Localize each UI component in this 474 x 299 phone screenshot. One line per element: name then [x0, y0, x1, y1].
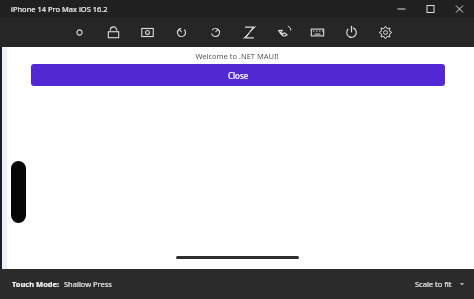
button[interactable]: Maximize — [416, 0, 445, 18]
staticText: Close — [228, 70, 249, 81]
button[interactable]: Rotate left — [172, 23, 191, 42]
staticText: Shallow Press — [64, 279, 112, 289]
button[interactable]: Rotate right — [206, 23, 225, 42]
staticText: Scale to fit — [415, 279, 452, 289]
staticText: Welcome to .NET MAUI! — [0, 51, 474, 61]
button[interactable]: Lock — [104, 23, 123, 42]
button[interactable]: Close — [445, 0, 474, 18]
button[interactable]: Minimize — [387, 0, 416, 18]
button[interactable]: Settings — [376, 23, 395, 42]
button[interactable]: Call — [274, 23, 293, 42]
staticText: Touch Mode: — [12, 279, 60, 289]
button[interactable]: Home — [70, 23, 89, 42]
button[interactable]: Shake — [240, 23, 259, 42]
button[interactable]: Close — [31, 64, 445, 86]
staticText: iPhone 14 Pro Max iOS 16.2 — [11, 4, 108, 14]
button[interactable]: Keyboard — [308, 23, 327, 42]
button[interactable]: Scale to fit — [415, 279, 466, 289]
button[interactable]: Screenshot — [138, 23, 157, 42]
button[interactable]: Power — [342, 23, 361, 42]
